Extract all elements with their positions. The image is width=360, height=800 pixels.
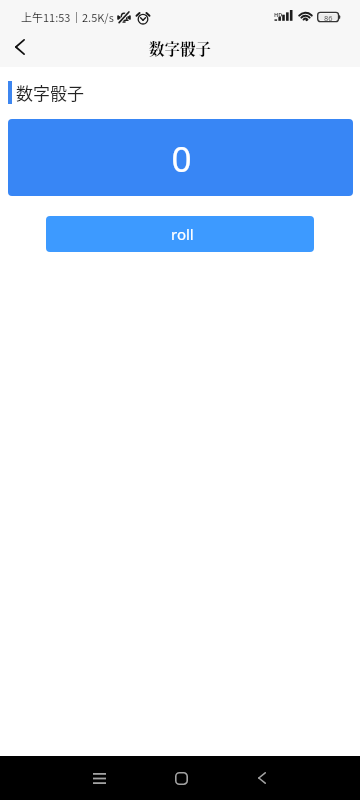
- button[interactable]: Recent apps: [59, 756, 139, 800]
- staticText: 2.5K/s: [82, 9, 114, 25]
- button[interactable]: Back: [4, 26, 36, 67]
- staticText: 数字骰子: [16, 80, 84, 105]
- staticText: 数字骰子: [149, 37, 212, 59]
- button[interactable]: 0: [8, 119, 353, 196]
- staticText: roll: [171, 224, 194, 244]
- staticText: 86: [324, 13, 333, 23]
- staticText: HD: [274, 11, 283, 18]
- staticText: 上午11:53: [21, 9, 71, 25]
- button[interactable]: Back: [222, 756, 302, 800]
- staticText: 0: [171, 135, 192, 183]
- button[interactable]: roll: [46, 216, 314, 252]
- button[interactable]: Home: [141, 756, 221, 800]
